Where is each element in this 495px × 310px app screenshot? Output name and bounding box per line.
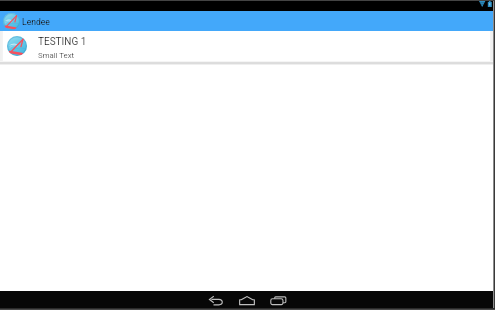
button[interactable]: Recent apps: [270, 296, 286, 306]
button[interactable]: TESTING 1: [3, 31, 490, 61]
staticText: Lendee: [22, 17, 50, 27]
staticText: TESTING 1: [38, 36, 87, 48]
button[interactable]: Home: [239, 296, 255, 305]
button[interactable]: Lendee: [0, 11, 493, 31]
staticText: Small Text: [38, 51, 75, 60]
button[interactable]: Back: [209, 296, 224, 306]
